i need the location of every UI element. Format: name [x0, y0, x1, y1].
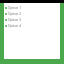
button[interactable]: Option 3	[4, 17, 60, 23]
button[interactable]: Option 1	[4, 5, 60, 11]
staticText: Option 2	[8, 12, 21, 16]
staticText: Option 4	[8, 24, 21, 28]
staticText: Option 3	[8, 18, 21, 22]
staticText: Option 1	[8, 6, 21, 10]
button[interactable]: Option 2	[4, 11, 60, 17]
button[interactable]: Option 4	[4, 23, 60, 29]
